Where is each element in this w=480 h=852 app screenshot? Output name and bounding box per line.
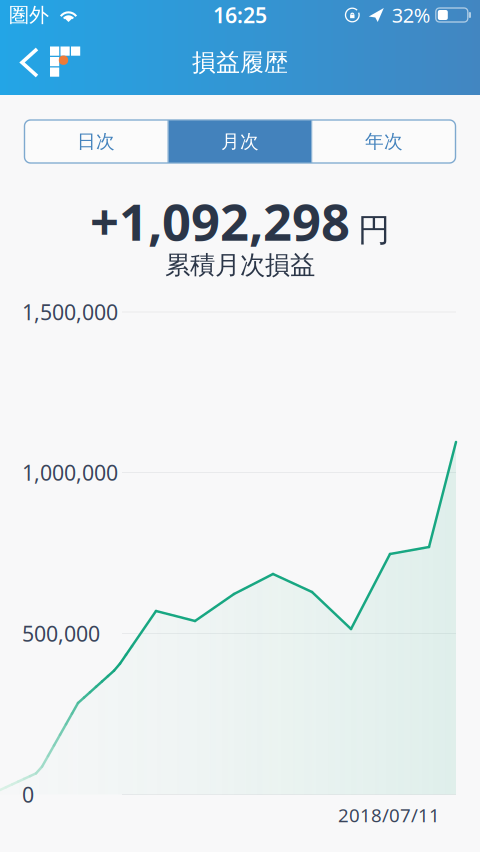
staticText: 円	[358, 210, 390, 250]
staticText: 月次	[221, 130, 259, 153]
button[interactable]: 月次	[168, 120, 311, 163]
button[interactable]: 日次	[24, 120, 167, 163]
staticText: 圏外	[9, 3, 49, 27]
staticText: 16:25	[213, 1, 267, 29]
staticText: 32%	[392, 2, 431, 28]
staticText: 累積月次損益	[165, 249, 315, 280]
button[interactable]: Back	[0, 34, 96, 90]
staticText: 日次	[77, 130, 115, 153]
staticText: +1,092,298	[90, 187, 350, 255]
staticText: 0	[22, 780, 34, 809]
staticText: 年次	[365, 130, 403, 153]
staticText: 500,000	[22, 619, 100, 648]
staticText: 2018/07/11	[338, 803, 440, 827]
staticText: 損益履歴	[192, 48, 288, 77]
staticText: 1,500,000	[22, 298, 118, 326]
staticText: 1,000,000	[22, 458, 118, 487]
button[interactable]: 年次	[312, 120, 455, 163]
